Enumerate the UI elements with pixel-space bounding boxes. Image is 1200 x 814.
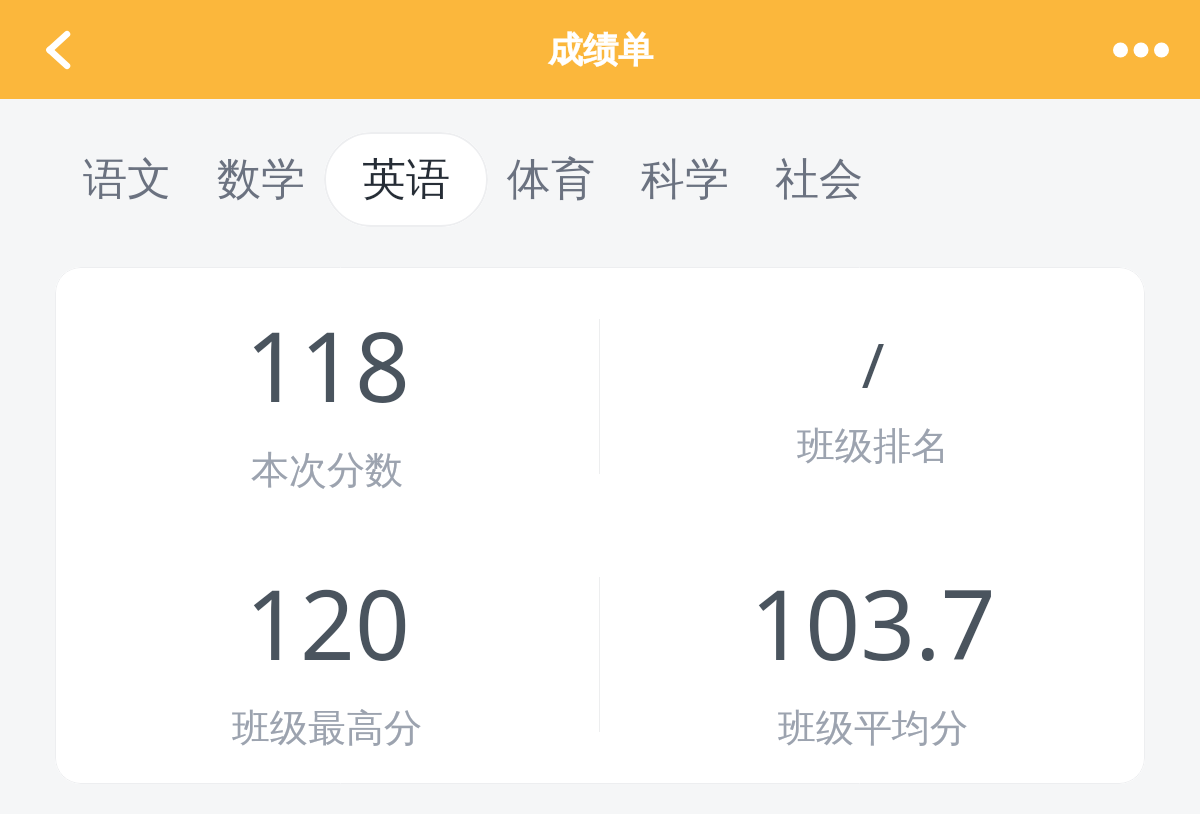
staticText: 班级排名 — [797, 422, 949, 470]
button[interactable]: 科学 — [630, 132, 740, 227]
button[interactable]: More options — [1098, 12, 1184, 88]
staticText: 成绩单 — [548, 28, 653, 72]
staticText: 英语 — [362, 152, 450, 207]
button[interactable]: 英语 — [324, 132, 488, 227]
button[interactable]: 118 — [55, 267, 1145, 784]
staticText: 118 — [245, 299, 410, 430]
button[interactable]: 体育 — [496, 132, 606, 227]
staticText: 社会 — [775, 152, 863, 207]
staticText: 体育 — [507, 152, 595, 207]
staticText: 班级平均分 — [778, 704, 968, 752]
button[interactable]: 数学 — [206, 132, 316, 227]
staticText: 语文 — [83, 152, 171, 207]
staticText: 班级最高分 — [232, 704, 422, 752]
staticText: 103.7 — [750, 557, 996, 688]
staticText: 科学 — [641, 152, 729, 207]
staticText: 120 — [245, 557, 410, 688]
button[interactable]: Back — [20, 12, 96, 88]
staticText: 本次分数 — [251, 446, 403, 494]
button[interactable]: 社会 — [764, 132, 874, 227]
staticText: 数学 — [217, 152, 305, 207]
staticText: / — [861, 322, 885, 406]
button[interactable]: 语文 — [72, 132, 182, 227]
